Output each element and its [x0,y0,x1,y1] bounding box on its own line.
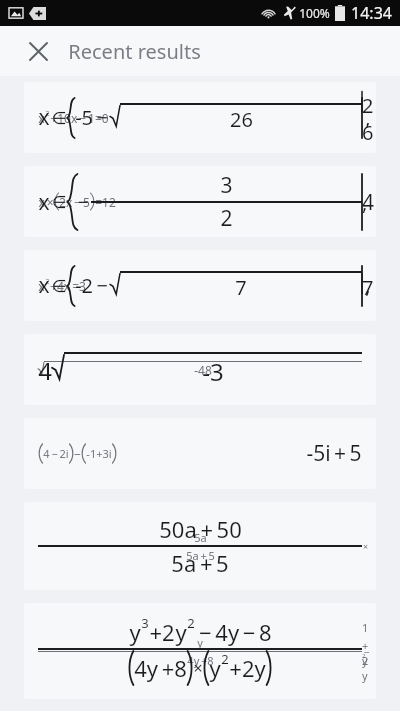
staticText: 100% [299,5,330,21]
staticText: 5a [194,530,207,545]
staticText: +10x − 1=0 [50,110,109,126]
staticText: -5 − [75,104,108,131]
staticText: 7 [235,274,247,301]
staticText: -1+3i [86,446,112,461]
button[interactable]: 4 − 2i [24,418,376,489]
button[interactable]: 5a [24,502,376,590]
button[interactable]: Close [22,35,54,67]
staticText: ∈ [52,276,67,296]
staticText: -2 − [75,272,108,299]
staticText: 26 [230,106,253,133]
button[interactable]: y [24,603,376,699]
staticText: y [129,617,141,647]
staticText: y [197,635,203,650]
staticText: +2 [149,617,175,647]
staticText: 4y +8 [187,653,214,668]
staticText: 14:34 [351,2,392,24]
staticText: 3 [220,171,233,200]
staticText: x [38,278,45,294]
staticText: x [38,103,50,132]
staticText: 5a + 5 [186,548,215,563]
staticText: 4 − 2i [43,446,69,461]
staticText: x [38,271,50,300]
staticText: 2 [45,277,50,287]
staticText: +4x =3 [50,278,86,294]
staticText: y [175,617,187,647]
staticText: =12 [95,194,116,210]
button[interactable]: x [24,250,376,321]
button[interactable]: -48 [24,334,376,405]
staticText: ∈ [52,108,67,128]
staticText: 2 [45,109,50,119]
staticText: 2x − 5 [59,194,90,210]
button[interactable]: x [24,82,376,153]
staticText: 4y +8 [134,653,187,683]
staticText: − [74,446,81,462]
staticText: 5a + 5 [171,548,229,578]
staticText: +2y [229,653,266,683]
staticText: 2 [220,204,233,233]
staticText: 2 [187,614,195,632]
staticText: 3 [141,614,149,632]
button[interactable]: x × [24,166,376,237]
staticText: -5i + 5 [306,439,362,468]
staticText: × [193,657,203,679]
staticText: − [78,189,89,215]
staticText: x [38,110,45,126]
staticText: 2 [221,650,229,668]
staticText: Recent results [68,38,201,65]
staticText: -48 [194,362,212,378]
staticText: 4 [38,354,52,387]
staticText: − 4y − 8 [195,617,272,647]
staticText: 50a + 50 [159,514,242,544]
staticText: x × [38,194,54,210]
staticText: x [38,188,50,217]
staticText: ∈ [52,192,67,212]
staticText: y [209,653,221,683]
staticText: -3 [202,355,224,388]
